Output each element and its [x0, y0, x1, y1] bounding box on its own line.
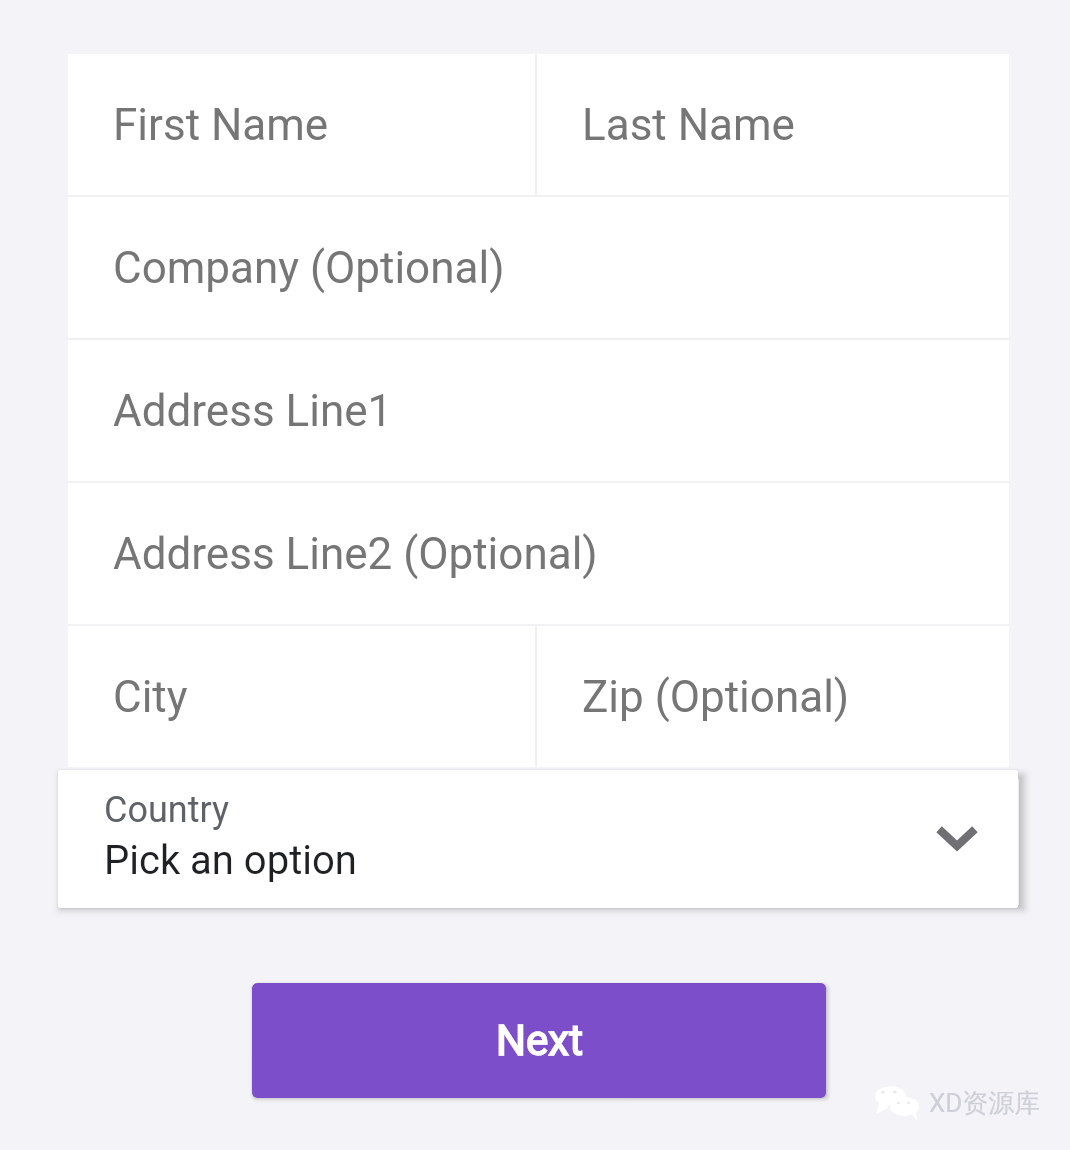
button[interactable]: Address Line2 (Optional)	[68, 483, 1009, 624]
staticText: Address Line2 (Optional)	[113, 528, 598, 580]
staticText: Pick an option	[104, 837, 357, 884]
button[interactable]: Company (Optional)	[68, 197, 1009, 338]
staticText: Address Line1	[113, 385, 393, 437]
button[interactable]: City	[68, 626, 535, 767]
staticText: Last Name	[582, 99, 795, 151]
button[interactable]: Zip (Optional)	[537, 626, 1009, 767]
staticText: Country	[104, 789, 230, 831]
staticText: Next	[496, 1016, 583, 1065]
button[interactable]: Expand country options	[919, 801, 995, 877]
button[interactable]: Last Name	[537, 54, 1009, 195]
staticText: City	[113, 671, 188, 723]
staticText: Company (Optional)	[113, 242, 505, 294]
button[interactable]: Country	[58, 770, 1018, 908]
staticText: First Name	[113, 99, 329, 151]
button[interactable]: Next	[252, 983, 826, 1098]
button[interactable]: Address Line1	[68, 340, 1009, 481]
button[interactable]: First Name	[68, 54, 535, 195]
staticText: XD资源库	[929, 1087, 1041, 1120]
staticText: Zip (Optional)	[582, 671, 850, 723]
